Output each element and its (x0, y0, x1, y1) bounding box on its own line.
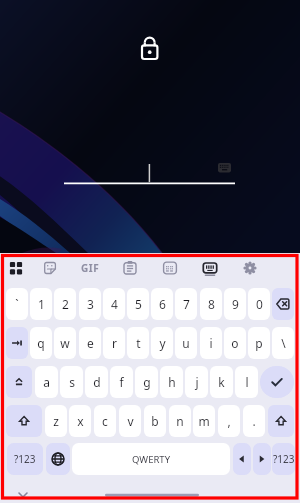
staticText: 8 (208, 296, 215, 312)
button[interactable]: n (169, 405, 191, 437)
staticText: f (119, 374, 124, 390)
staticText: 0 (256, 296, 263, 312)
button[interactable]: ?123 (7, 443, 43, 475)
button[interactable]: 8 (200, 288, 222, 320)
button[interactable]: Clipboard (114, 254, 146, 282)
button[interactable]: 6 (151, 288, 173, 320)
button[interactable]: Change language (46, 443, 70, 475)
button[interactable]: Toolbar menu (0, 254, 32, 282)
button[interactable]: 4 (103, 288, 125, 320)
staticText: 5 (135, 296, 142, 312)
staticText: ?123 (273, 452, 295, 466)
staticText: v (127, 413, 134, 429)
staticText: , (227, 413, 231, 429)
button[interactable]: Shift (268, 405, 294, 437)
button[interactable]: y (151, 327, 173, 359)
button[interactable]: s (60, 366, 83, 398)
staticText: ?123 (14, 452, 36, 466)
button[interactable]: o (224, 327, 246, 359)
button[interactable]: 1 (30, 288, 52, 320)
button[interactable]: w (54, 327, 76, 359)
button[interactable]: e (79, 327, 101, 359)
button[interactable]: Change keyboard (217, 162, 232, 173)
staticText: 6 (159, 296, 166, 312)
staticText: r (112, 335, 117, 351)
button[interactable]: x (69, 405, 91, 437)
button[interactable]: a (35, 366, 58, 398)
button[interactable]: . (243, 405, 265, 437)
button[interactable]: h (160, 366, 183, 398)
button[interactable]: b (144, 405, 166, 437)
button[interactable]: 0 (248, 288, 270, 320)
staticText: \ (281, 335, 286, 351)
button[interactable]: k (210, 366, 233, 398)
staticText: QWERTY (132, 453, 171, 466)
staticText: w (60, 335, 70, 351)
staticText: 1 (38, 296, 45, 312)
staticText: 3 (87, 296, 94, 312)
button[interactable]: m (193, 405, 215, 437)
button[interactable]: g (135, 366, 158, 398)
button[interactable]: c (94, 405, 116, 437)
staticText: GIF (81, 261, 100, 275)
button[interactable]: Enter (260, 366, 294, 398)
button[interactable]: 9 (224, 288, 246, 320)
button[interactable]: Move cursor right (253, 443, 271, 475)
button[interactable]: Hide keyboard (15, 489, 31, 501)
staticText: i (209, 335, 213, 351)
staticText: e (87, 335, 94, 351)
staticText: l (245, 374, 249, 390)
staticText: g (143, 374, 151, 390)
button[interactable]: v (119, 405, 141, 437)
staticText: q (37, 335, 45, 351)
button[interactable]: ` (6, 288, 28, 320)
staticText: n (176, 413, 184, 429)
staticText: j (195, 374, 199, 390)
staticText: a (43, 374, 50, 390)
button[interactable]: q (30, 327, 52, 359)
button[interactable]: \ (272, 327, 294, 359)
button[interactable]: GIF (74, 254, 106, 282)
button[interactable]: p (248, 327, 270, 359)
staticText: p (255, 335, 263, 351)
button[interactable]: Stickers (34, 254, 66, 282)
staticText: u (182, 335, 190, 351)
button[interactable]: Caps lock (6, 366, 32, 398)
button[interactable]: Backspace (272, 288, 294, 320)
button[interactable]: Settings (234, 254, 266, 282)
button[interactable]: z (45, 405, 67, 437)
staticText: b (151, 413, 159, 429)
staticText: . (252, 413, 256, 429)
button[interactable]: 3 (79, 288, 101, 320)
staticText: 9 (232, 296, 239, 312)
button[interactable]: i (200, 327, 222, 359)
button[interactable]: 5 (127, 288, 149, 320)
staticText: x (77, 413, 84, 429)
button[interactable]: j (185, 366, 208, 398)
button[interactable]: Shift (6, 405, 42, 437)
staticText: 7 (183, 296, 190, 312)
button[interactable]: d (85, 366, 108, 398)
button[interactable]: Move cursor left (233, 443, 251, 475)
staticText: s (69, 374, 75, 390)
button[interactable]: Tab (6, 327, 28, 359)
staticText: o (231, 335, 239, 351)
button[interactable]: Modes (154, 254, 186, 282)
button[interactable]: Keyboard layout (194, 254, 226, 282)
button[interactable]: t (127, 327, 149, 359)
staticText: k (218, 374, 225, 390)
button[interactable]: 7 (175, 288, 197, 320)
staticText: 2 (62, 296, 69, 312)
button[interactable]: r (103, 327, 125, 359)
button[interactable]: , (218, 405, 240, 437)
button[interactable]: f (110, 366, 133, 398)
button[interactable]: 2 (54, 288, 76, 320)
button[interactable]: ?123 (272, 443, 295, 475)
button[interactable]: l (235, 366, 258, 398)
staticText: 4 (111, 296, 118, 312)
staticText: d (93, 374, 101, 390)
button[interactable]: u (175, 327, 197, 359)
staticText: h (168, 374, 176, 390)
button[interactable]: QWERTY (72, 443, 230, 475)
staticText: y (159, 335, 166, 351)
